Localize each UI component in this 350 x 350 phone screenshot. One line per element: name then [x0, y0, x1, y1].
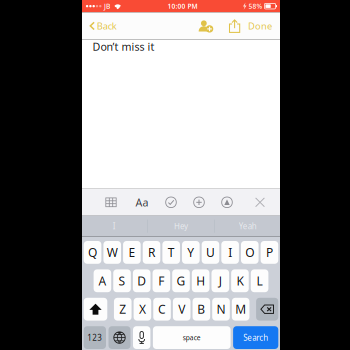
button[interactable]: Delete [256, 298, 278, 321]
button[interactable]: I [221, 241, 239, 264]
button[interactable]: K [231, 269, 249, 292]
staticText: Y [187, 244, 194, 260]
button[interactable]: Close [249, 189, 271, 216]
staticText: Done [248, 20, 272, 32]
staticText: A [98, 273, 106, 289]
button[interactable]: Dictate [133, 326, 150, 349]
button[interactable]: Aa [131, 189, 153, 216]
button[interactable]: Z [114, 298, 131, 321]
staticText: 58% [248, 2, 262, 11]
button[interactable]: O [241, 241, 259, 264]
staticText: Yeah [239, 221, 257, 231]
button[interactable]: R [143, 241, 160, 264]
staticText: T [168, 244, 175, 260]
staticText: K [236, 273, 243, 289]
staticText: M [235, 301, 246, 317]
staticText: X [139, 301, 146, 317]
staticText: S [119, 273, 126, 289]
staticText: N [216, 301, 225, 317]
staticText: L [257, 273, 263, 289]
button[interactable]: B [193, 298, 210, 321]
staticText: 123 [87, 332, 102, 343]
staticText: O [245, 244, 254, 260]
button[interactable]: N [212, 298, 230, 321]
staticText: I [113, 221, 116, 231]
button[interactable]: L [251, 269, 268, 292]
button[interactable]: Add attachment [188, 189, 210, 216]
staticText: space [183, 333, 201, 342]
button[interactable]: Add People [193, 15, 215, 37]
staticText: E [128, 244, 135, 260]
button[interactable]: D [133, 269, 150, 292]
staticText: W [107, 244, 118, 260]
button[interactable]: F [153, 269, 170, 292]
staticText: Z [119, 301, 126, 317]
staticText: R [148, 244, 155, 260]
button[interactable]: C [153, 298, 171, 321]
button[interactable]: X [134, 298, 151, 321]
staticText: Q [88, 244, 97, 260]
staticText: U [206, 244, 215, 260]
staticText: C [158, 301, 166, 317]
button[interactable]: Q [84, 241, 101, 264]
button[interactable]: Done [245, 14, 280, 38]
button[interactable]: 123 [84, 326, 106, 349]
staticText: I [228, 244, 232, 260]
button[interactable]: J [211, 269, 229, 292]
staticText: J [219, 273, 222, 289]
button[interactable]: M [232, 298, 249, 321]
button[interactable]: E [123, 241, 141, 264]
button[interactable]: A [94, 269, 111, 292]
staticText: D [137, 273, 146, 289]
staticText: V [178, 301, 185, 317]
staticText: Back [97, 20, 117, 32]
staticText: Search [243, 332, 268, 343]
staticText: 10:00 PM [167, 2, 197, 11]
button[interactable]: U [202, 241, 219, 264]
staticText: G [176, 273, 185, 289]
button[interactable]: H [192, 269, 209, 292]
button[interactable]: W [103, 241, 121, 264]
button[interactable]: Share [215, 15, 245, 37]
button[interactable]: Next keyboard [108, 326, 130, 349]
button[interactable]: Search [233, 326, 278, 349]
staticText: P [266, 244, 273, 260]
button[interactable]: S [113, 269, 131, 292]
button[interactable]: space [153, 326, 231, 349]
staticText: JB [104, 2, 110, 11]
button[interactable]: V [173, 298, 190, 321]
staticText: Aa [135, 195, 148, 209]
button[interactable]: Back [82, 14, 117, 38]
button[interactable]: T [162, 241, 180, 264]
staticText: Don’t miss it [93, 39, 155, 54]
button[interactable]: G [172, 269, 190, 292]
staticText: F [158, 273, 164, 289]
staticText: H [196, 273, 205, 289]
button[interactable]: P [261, 241, 278, 264]
button[interactable]: Markup [216, 189, 238, 216]
button[interactable]: Checklist [160, 189, 182, 216]
button[interactable]: I [81, 216, 147, 237]
staticText: B [197, 301, 205, 317]
button[interactable]: Table [100, 189, 122, 216]
button[interactable]: Shift [84, 298, 107, 321]
button[interactable]: Hey [148, 216, 214, 237]
staticText: Hey [174, 221, 188, 231]
button[interactable]: Yeah [215, 216, 281, 237]
button[interactable]: Y [182, 241, 200, 264]
